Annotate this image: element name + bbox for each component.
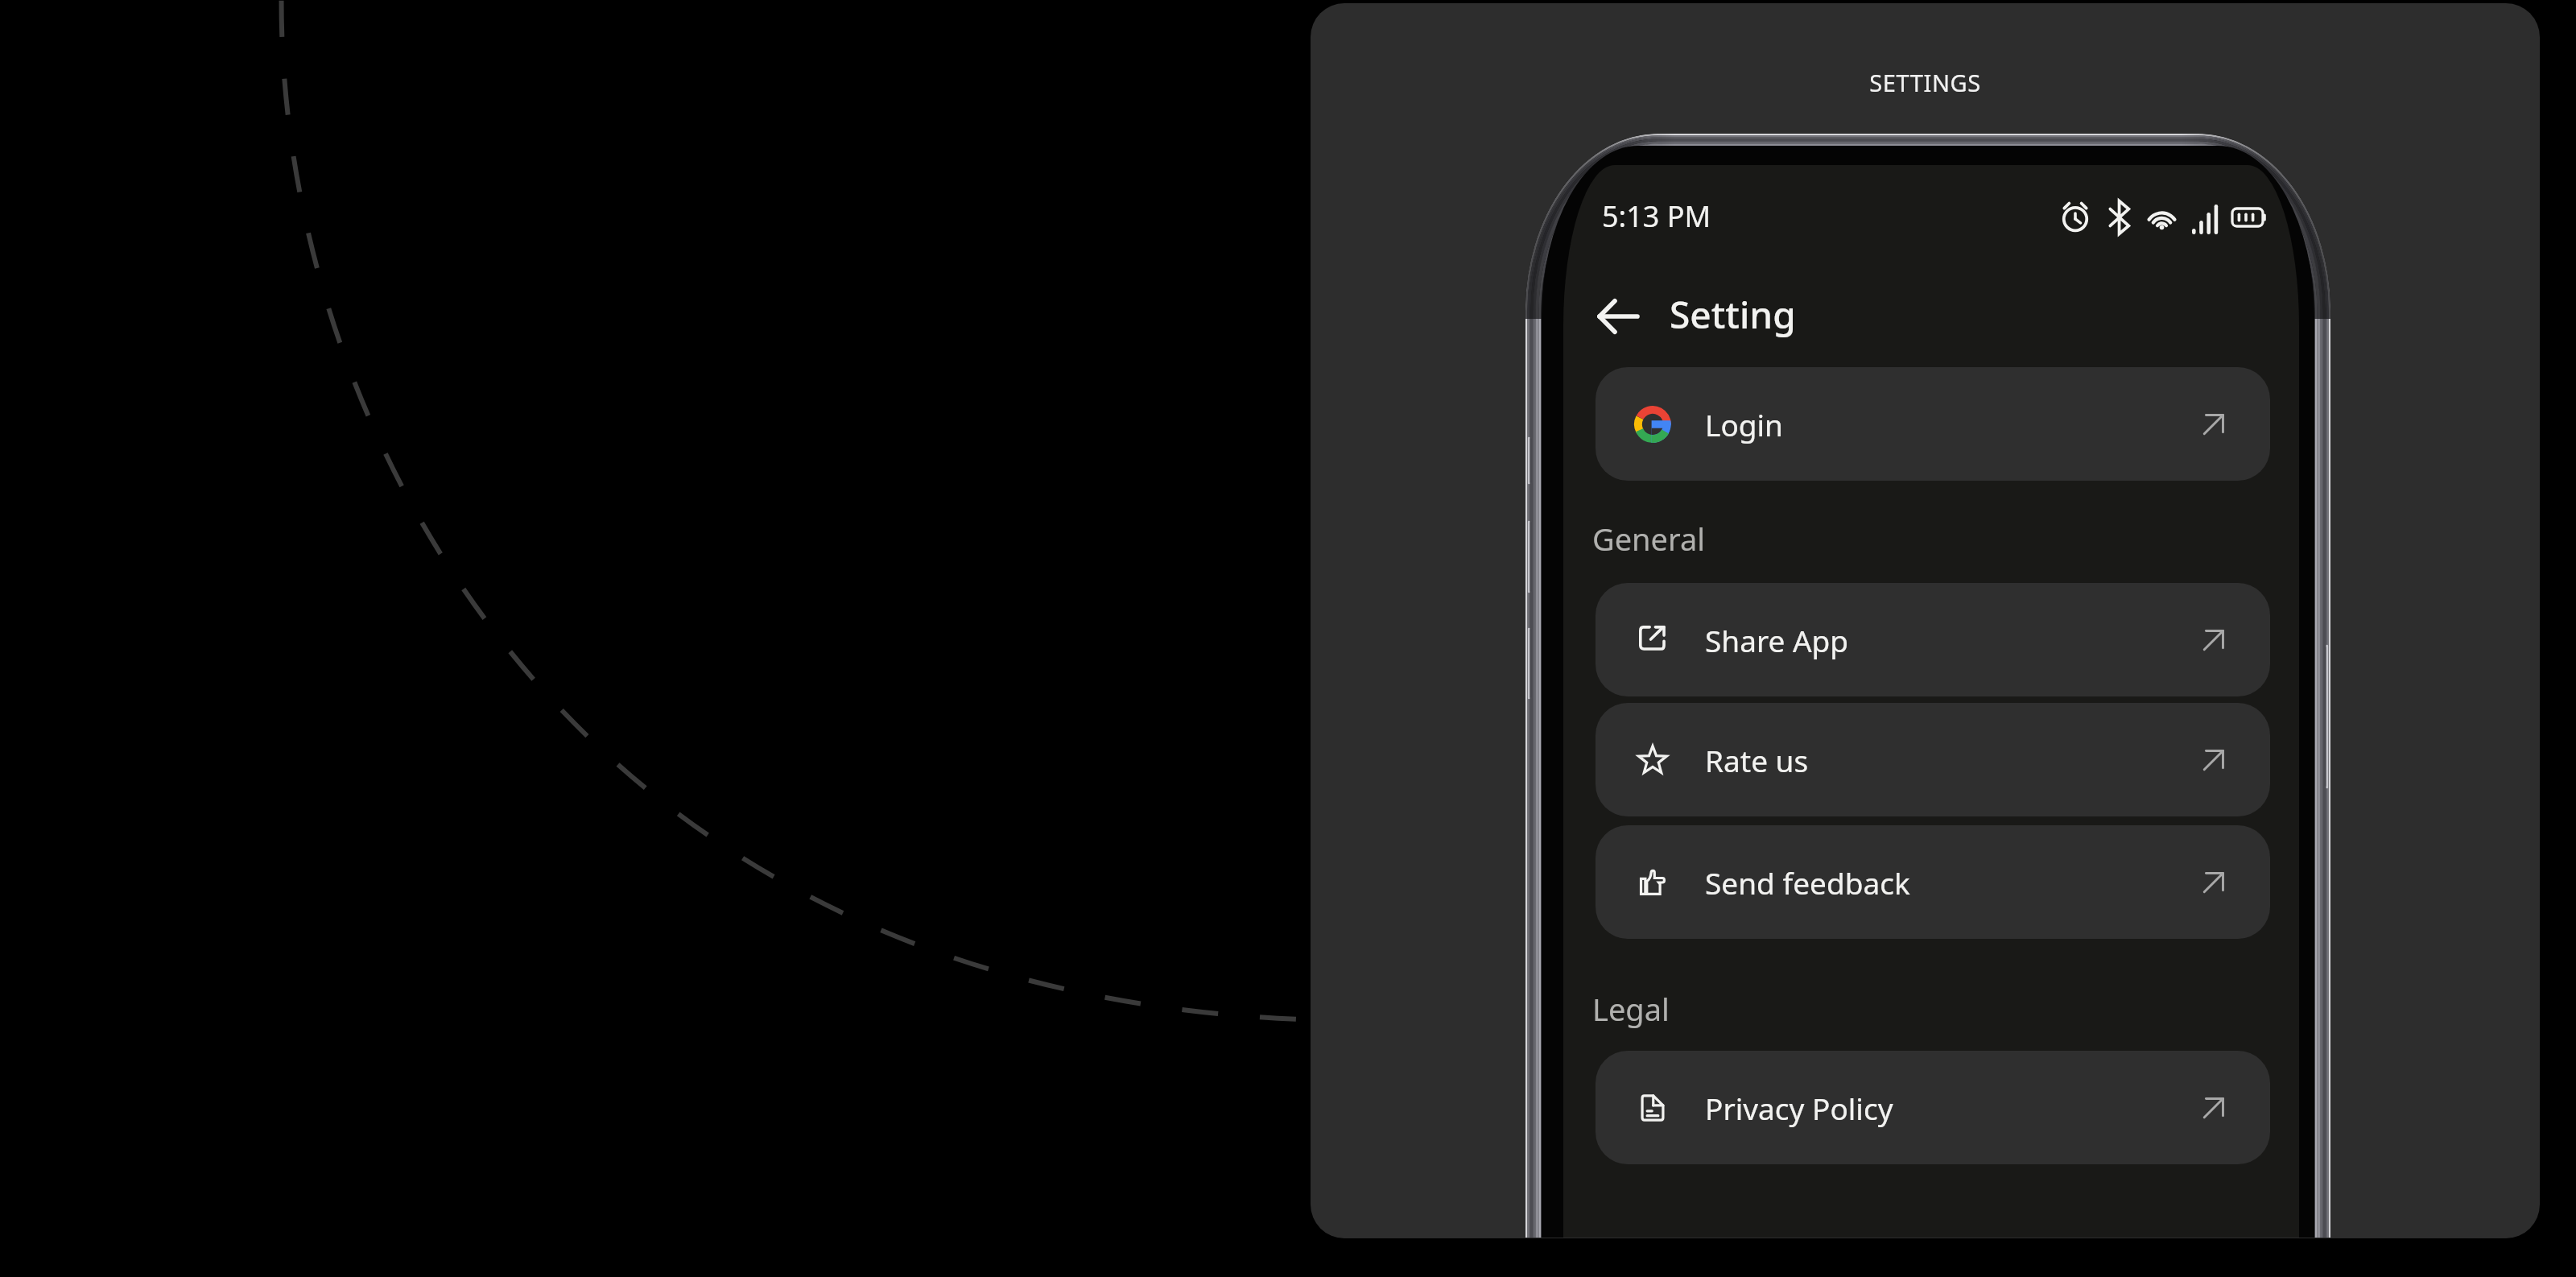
staticText: 5:13 PM [1602,196,1711,236]
staticText: Rate us [1705,740,1809,780]
staticText: Setting [1670,289,1796,340]
staticText: Privacy Policy [1705,1088,1893,1128]
button[interactable]: Share App [1596,583,2270,696]
staticText: Legal [1592,988,1670,1030]
button[interactable]: Send feedback [1596,825,2270,939]
staticText: Login [1705,404,1783,444]
staticText: SETTINGS [1311,67,2540,98]
button[interactable]: Rate us [1596,703,2270,816]
staticText: General [1592,518,1706,560]
button[interactable]: Privacy Policy [1596,1051,2270,1164]
staticText: Send feedback [1705,862,1910,903]
button[interactable]: Back [1591,290,1644,343]
button[interactable]: Login [1596,367,2270,481]
staticText: Share App [1705,620,1849,660]
